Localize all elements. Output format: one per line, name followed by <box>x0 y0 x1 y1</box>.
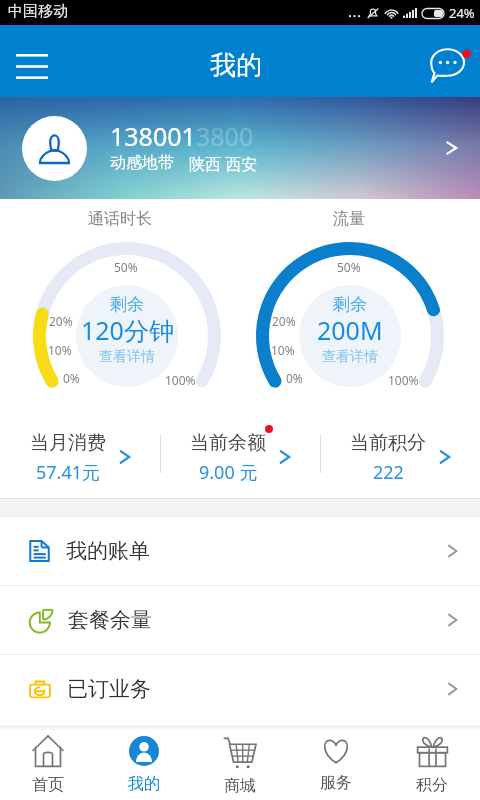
staticText: 查看详情 <box>99 348 155 366</box>
staticText: 我的 <box>210 49 262 82</box>
staticText: 0% <box>63 370 80 386</box>
staticText: 100% <box>165 372 196 388</box>
staticText: 9.00 元 <box>199 460 258 485</box>
staticText: 100% <box>388 372 419 388</box>
staticText: 当前余额 <box>190 431 266 455</box>
staticText: 陕西 西安 <box>189 153 258 175</box>
staticText: 剩余 <box>333 294 367 315</box>
staticText: 服务 <box>320 773 352 793</box>
button[interactable]: 首页 <box>0 730 96 800</box>
staticText: 商城 <box>224 776 256 796</box>
staticText: 首页 <box>32 775 64 795</box>
staticText: 10% <box>48 342 72 358</box>
button[interactable]: 我的 <box>96 730 192 800</box>
staticText: 200M <box>317 313 383 347</box>
staticText: 120分钟 <box>81 313 174 347</box>
staticText: 套餐余量 <box>68 607 152 633</box>
staticText: 138001 <box>110 119 196 153</box>
button[interactable]: 已订业务 <box>0 655 480 723</box>
staticText: 0% <box>286 370 303 386</box>
staticText: 我的 <box>128 774 160 794</box>
button[interactable]: 当前余额 <box>161 410 320 498</box>
staticText: 通话时长 <box>88 209 152 229</box>
staticText: 已订业务 <box>67 676 151 702</box>
button[interactable]: 服务 <box>288 730 384 800</box>
staticText: 50% <box>337 259 361 275</box>
button[interactable]: 50% <box>27 236 227 436</box>
staticText: 20% <box>272 313 296 329</box>
staticText: 查看详情 <box>322 348 378 366</box>
button[interactable]: 商城 <box>192 730 288 800</box>
staticText: 24% <box>449 4 475 22</box>
button[interactable]: 138001 <box>0 97 480 199</box>
staticText: 积分 <box>416 775 448 795</box>
staticText: 中国移动 <box>8 2 68 21</box>
staticText: 当月消费 <box>30 431 106 455</box>
staticText: 57.41元 <box>36 460 101 485</box>
button[interactable]: 当月消费 <box>0 410 160 498</box>
staticText: 剩余 <box>110 294 144 315</box>
button[interactable]: 当前积分 <box>321 410 480 498</box>
staticText: 20% <box>49 313 73 329</box>
staticText: 3800 <box>196 119 254 153</box>
staticText: 10% <box>271 342 295 358</box>
button[interactable]: Messages <box>422 36 472 86</box>
button[interactable]: 50% <box>250 236 450 436</box>
button[interactable]: Menu <box>8 37 56 85</box>
staticText: 50% <box>114 259 138 275</box>
staticText: 动感地带 <box>110 153 174 173</box>
button[interactable]: 积分 <box>384 730 480 800</box>
staticText: 流量 <box>333 209 365 229</box>
staticText: 我的账单 <box>66 538 150 564</box>
staticText: 当前积分 <box>350 431 426 455</box>
button[interactable]: 我的账单 <box>0 517 480 585</box>
staticText: 222 <box>373 460 404 485</box>
button[interactable]: 套餐余量 <box>0 586 480 654</box>
